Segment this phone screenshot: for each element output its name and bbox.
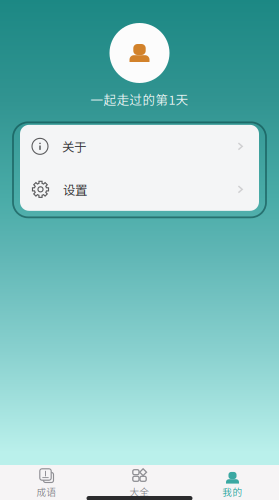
button[interactable]: 成语	[0, 465, 93, 500]
button[interactable]: 设置	[20, 168, 259, 211]
button[interactable]: 大全	[93, 465, 186, 500]
staticText: 关于	[62, 137, 86, 155]
staticText: 大全	[129, 484, 149, 498]
button[interactable]: 关于	[20, 125, 259, 168]
staticText: 成语	[36, 484, 56, 498]
button[interactable]: 我的	[186, 465, 279, 500]
staticText: 一起走过的第1天	[90, 90, 188, 108]
staticText: 设置	[63, 180, 87, 198]
staticText: 我的	[222, 484, 242, 498]
